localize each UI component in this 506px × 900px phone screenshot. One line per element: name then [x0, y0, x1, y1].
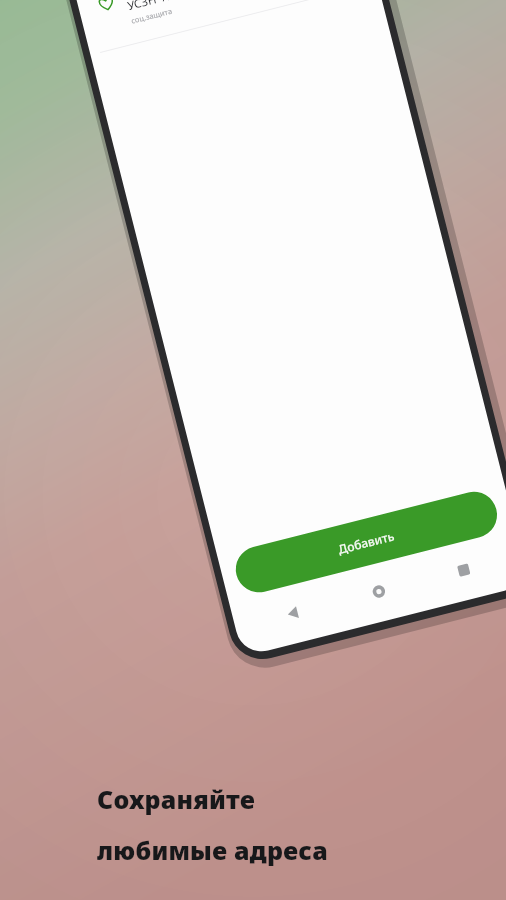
other: Сохраняйте любимые адреса: [0, 0, 506, 900]
button[interactable]: Добавить: [0, 0, 70, 30]
